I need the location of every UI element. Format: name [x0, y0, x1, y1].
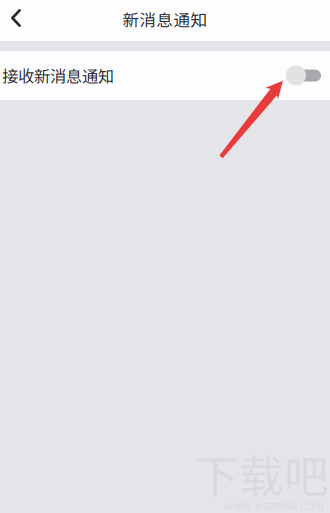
button[interactable]: 接收新消息通知	[0, 51, 330, 100]
staticText: www.xiazaiba.com	[224, 499, 324, 513]
staticText: 接收新消息通知	[2, 64, 114, 87]
staticText: 新消息通知	[122, 7, 207, 31]
button[interactable]: Back	[0, 0, 32, 26]
staticText: 下载吧	[194, 441, 329, 506]
